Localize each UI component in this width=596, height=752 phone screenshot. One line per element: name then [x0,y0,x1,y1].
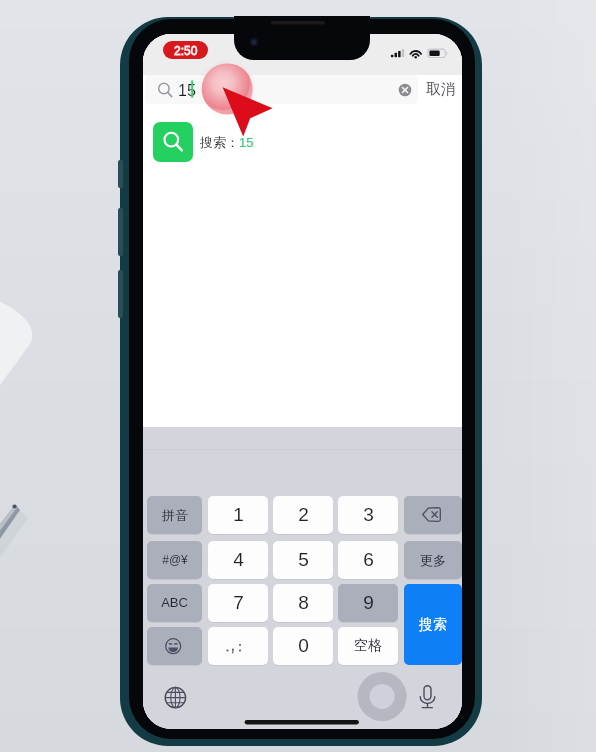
button[interactable]: 0 [273,627,333,665]
staticText: 更多 [420,552,446,568]
button[interactable]: Clear text [397,82,413,98]
staticText: 4 [233,549,244,570]
button[interactable]: 更多 [404,541,462,579]
button[interactable]: 9 [338,584,398,622]
button[interactable] [208,627,268,665]
button[interactable]: 4 [208,541,268,579]
staticText: 8 [298,592,309,613]
staticText: 0 [298,635,309,656]
button[interactable]: 搜索： [153,122,413,162]
button[interactable]: ABC [147,584,202,622]
button[interactable]: 7 [208,584,268,622]
staticText: 空格 [354,637,382,655]
staticText: 搜索： [200,134,239,150]
staticText: 取消 [426,80,456,99]
button[interactable]: #@¥ [147,541,202,579]
staticText: 2 [298,504,309,525]
button[interactable]: 15 [145,75,418,104]
staticText: 1 [233,504,244,525]
button[interactable]: 空格 [338,627,398,665]
button[interactable]: 6 [338,541,398,579]
staticText: 搜索 [419,616,447,634]
staticText: 2:50 [174,44,198,57]
button[interactable]: 1 [208,496,268,534]
button[interactable]: 取消 [419,75,462,104]
staticText: 3 [363,504,374,525]
button[interactable]: 3 [338,496,398,534]
staticText: 15 [178,82,196,100]
button[interactable]: 搜索 [404,584,462,665]
staticText: ABC [161,595,188,610]
staticText: #@¥ [162,553,188,566]
button[interactable]: 拼音 [147,496,202,534]
staticText: 拼音 [162,507,188,523]
button[interactable]: 5 [273,541,333,579]
staticText: 6 [363,549,374,570]
button[interactable] [404,496,462,534]
staticText: 9 [363,592,374,613]
staticText: 15 [239,135,254,150]
button[interactable]: 8 [273,584,333,622]
staticText: 5 [298,549,309,570]
staticText: 7 [233,592,244,613]
button[interactable] [147,627,202,665]
button[interactable]: 2 [273,496,333,534]
